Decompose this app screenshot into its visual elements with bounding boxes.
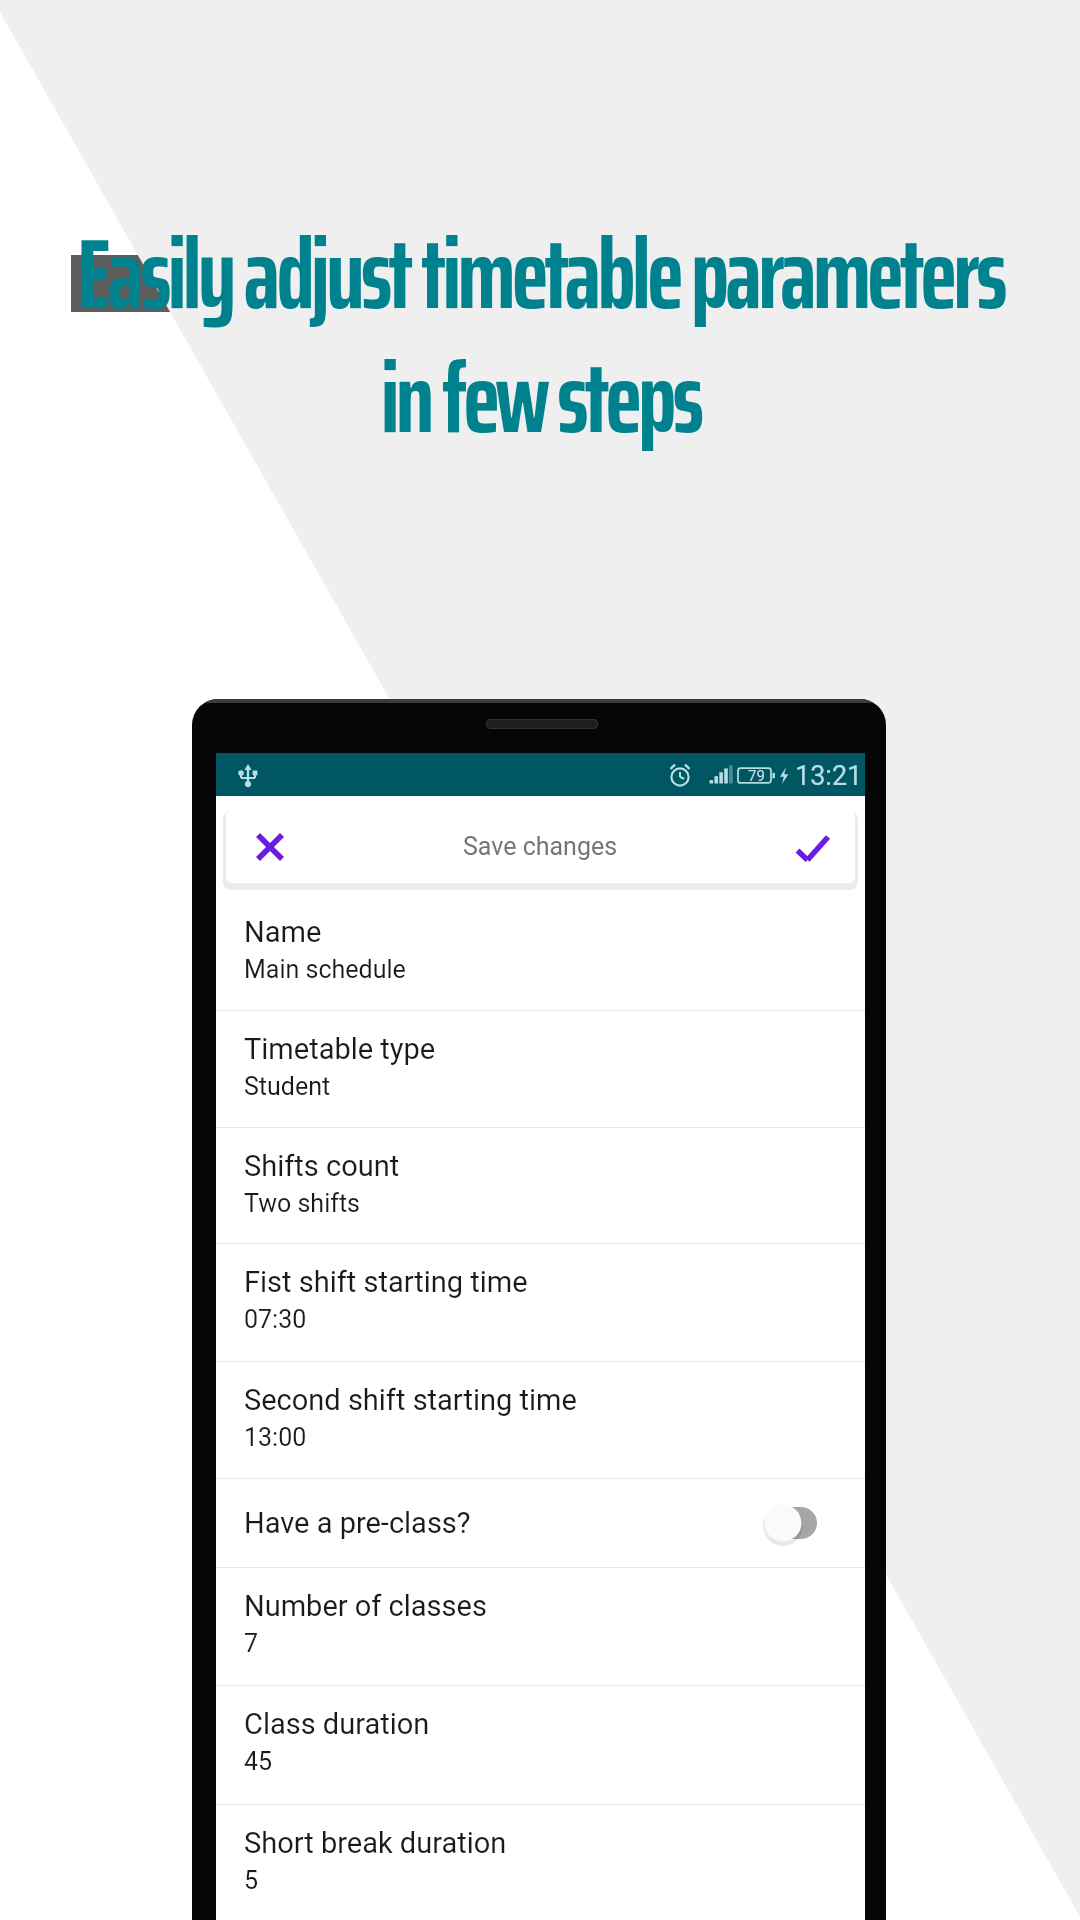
- button[interactable]: Fist shift starting time: [216, 1244, 865, 1362]
- button[interactable]: Close: [226, 810, 855, 883]
- staticText: Save changes: [463, 832, 618, 861]
- staticText: Student: [244, 1072, 331, 1101]
- staticText: Easily adjust timetable parameters in fe…: [77, 197, 1004, 475]
- button[interactable]: Name: [216, 894, 865, 1011]
- button[interactable]: Second shift starting time: [216, 1362, 865, 1479]
- button[interactable]: Save: [785, 819, 841, 875]
- staticText: Name: [244, 915, 322, 949]
- button[interactable]: Have a pre-class?: [216, 1479, 865, 1568]
- staticText: Main schedule: [244, 955, 406, 984]
- button[interactable]: Shifts count: [216, 1128, 865, 1244]
- staticText: Have a pre-class?: [244, 1506, 471, 1540]
- staticText: 07:30: [244, 1305, 307, 1334]
- button[interactable]: Have a pre-class toggle: [753, 1485, 829, 1561]
- staticText: Number of classes: [244, 1589, 487, 1623]
- staticText: Two shifts: [244, 1189, 360, 1218]
- staticText: 13:21: [795, 760, 863, 792]
- button[interactable]: Short break duration: [216, 1805, 865, 1920]
- staticText: 45: [244, 1747, 273, 1776]
- staticText: Fist shift starting time: [244, 1265, 528, 1299]
- button[interactable]: Class duration: [216, 1686, 865, 1805]
- button[interactable]: Number of classes: [216, 1568, 865, 1686]
- staticText: Shifts count: [244, 1149, 400, 1183]
- staticText: Second shift starting time: [244, 1383, 577, 1417]
- staticText: 13:00: [244, 1423, 307, 1452]
- staticText: Timetable type: [244, 1032, 436, 1066]
- staticText: Short break duration: [244, 1826, 507, 1860]
- button[interactable]: Timetable type: [216, 1011, 865, 1128]
- button[interactable]: Close: [242, 819, 298, 875]
- staticText: 5: [244, 1866, 259, 1895]
- staticText: 7: [244, 1629, 259, 1658]
- staticText: Class duration: [244, 1707, 430, 1741]
- staticText: 79: [748, 767, 765, 785]
